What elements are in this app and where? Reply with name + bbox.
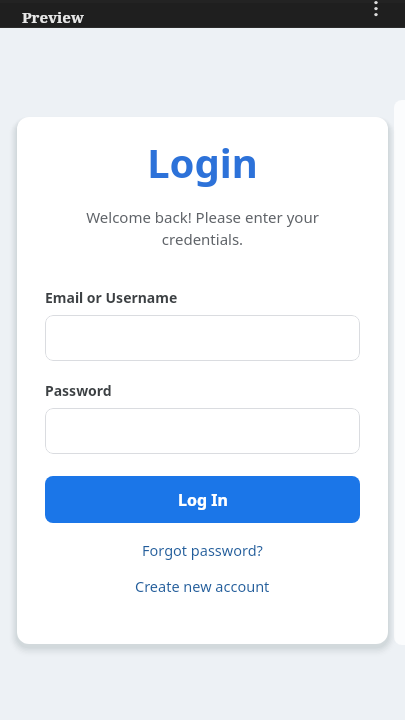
button[interactable]: Password input (45, 408, 360, 454)
staticText: Log In (178, 489, 228, 511)
staticText: Login (17, 135, 388, 189)
staticText: Preview (22, 7, 84, 27)
button[interactable]: Create new account (17, 575, 388, 597)
button[interactable]: Email or Username input (45, 315, 360, 361)
staticText: Forgot password? (142, 540, 263, 560)
button[interactable]: Log In (45, 476, 360, 523)
button[interactable]: More options (361, 0, 391, 23)
staticText: Email or Username (45, 288, 178, 307)
staticText: Welcome back! Please enter your credenti… (51, 207, 354, 250)
staticText: Password (45, 381, 112, 400)
staticText: Create new account (135, 576, 270, 596)
button[interactable]: Forgot password? (17, 539, 388, 561)
